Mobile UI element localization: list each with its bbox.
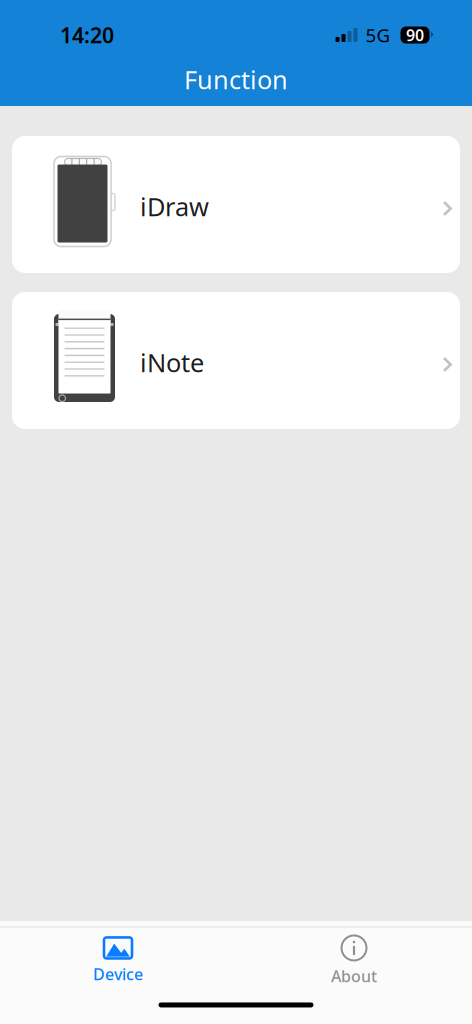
staticText: 14:20	[60, 21, 114, 49]
staticText: 5G	[365, 23, 390, 47]
staticText: About	[331, 965, 377, 987]
staticText: Device	[93, 963, 143, 985]
staticText: 90	[406, 24, 424, 46]
staticText: iDraw	[140, 190, 209, 223]
button[interactable]: iDraw	[12, 136, 460, 273]
button[interactable]: Device	[0, 927, 236, 1002]
button[interactable]: About	[236, 927, 472, 1002]
staticText: iNote	[140, 346, 204, 379]
button[interactable]: iNote	[12, 292, 460, 429]
staticText: Function	[184, 63, 288, 96]
